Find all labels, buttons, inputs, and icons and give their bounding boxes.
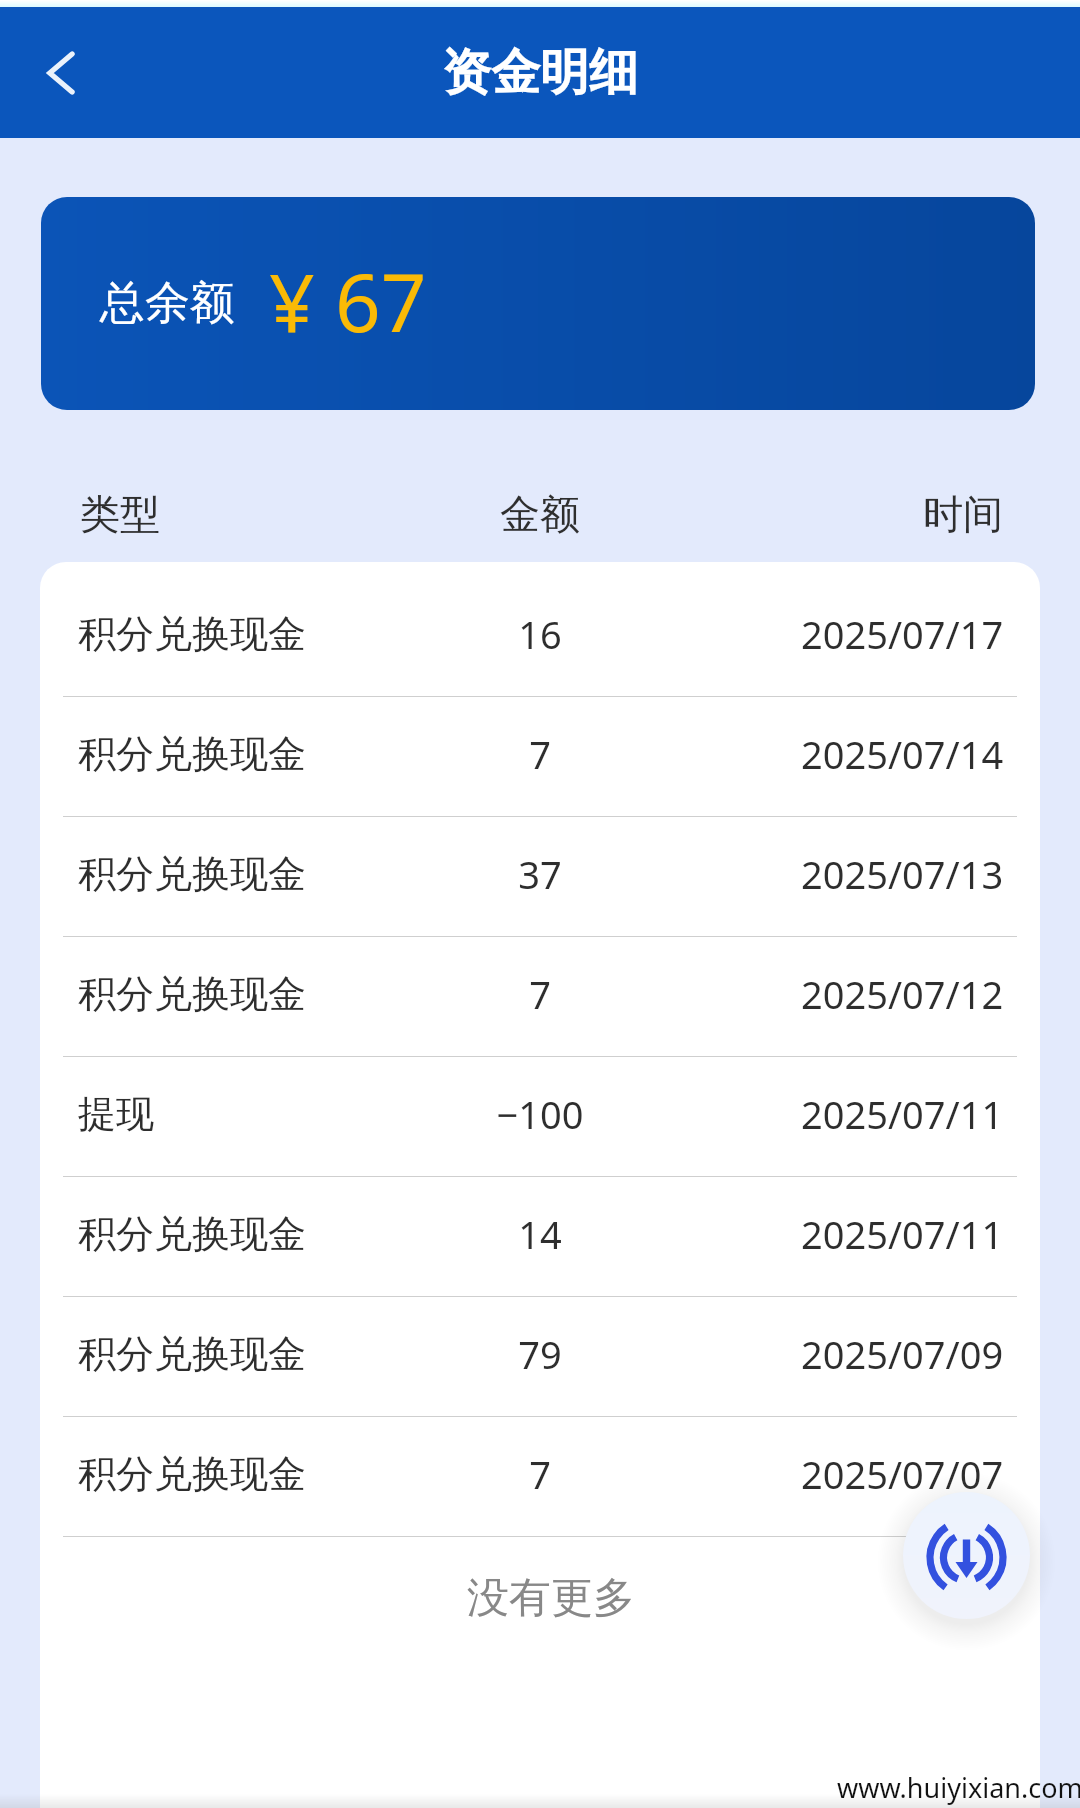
staticText: 金额 bbox=[500, 489, 580, 539]
staticText: 积分兑换现金 bbox=[78, 730, 306, 778]
staticText: 37 bbox=[420, 848, 660, 900]
button[interactable]: Back bbox=[22, 33, 102, 113]
button[interactable]: Download bbox=[903, 1492, 1030, 1619]
staticText: 积分兑换现金 bbox=[78, 610, 306, 658]
button[interactable]: 积分兑换现金 bbox=[40, 1417, 1040, 1537]
staticText: 7 bbox=[420, 1448, 660, 1500]
staticText: 类型 bbox=[80, 489, 160, 539]
staticText: 14 bbox=[420, 1208, 660, 1260]
staticText: 积分兑换现金 bbox=[78, 1210, 306, 1258]
staticText: 积分兑换现金 bbox=[78, 1330, 306, 1378]
staticText: 2025/07/12 bbox=[801, 968, 1004, 1020]
button[interactable]: 总余额 bbox=[41, 197, 1035, 410]
staticText: 16 bbox=[420, 608, 660, 660]
button[interactable]: 积分兑换现金 bbox=[40, 697, 1040, 817]
button[interactable]: 积分兑换现金 bbox=[40, 937, 1040, 1057]
staticText: ¥ bbox=[269, 246, 315, 355]
staticText: 积分兑换现金 bbox=[78, 1450, 306, 1498]
staticText: 79 bbox=[420, 1328, 660, 1380]
button[interactable]: 积分兑换现金 bbox=[40, 817, 1040, 937]
staticText: 2025/07/09 bbox=[801, 1328, 1004, 1380]
staticText: 7 bbox=[420, 968, 660, 1020]
button[interactable]: 提现 bbox=[40, 1057, 1040, 1177]
button[interactable]: 积分兑换现金 bbox=[40, 1297, 1040, 1417]
staticText: 资金明细 bbox=[442, 42, 638, 104]
staticText: 2025/07/07 bbox=[801, 1448, 1004, 1500]
staticText: 67 bbox=[335, 246, 427, 355]
staticText: 积分兑换现金 bbox=[78, 970, 306, 1018]
button[interactable]: 积分兑换现金 bbox=[40, 1177, 1040, 1297]
staticText: −100 bbox=[420, 1088, 660, 1140]
button[interactable]: 积分兑换现金 bbox=[40, 577, 1040, 697]
staticText: 时间 bbox=[923, 489, 1003, 539]
staticText: 2025/07/11 bbox=[801, 1088, 1004, 1140]
staticText: www.huiyixian.com bbox=[837, 1769, 1080, 1806]
staticText: 积分兑换现金 bbox=[78, 850, 306, 898]
staticText: 提现 bbox=[78, 1090, 154, 1138]
staticText: 2025/07/13 bbox=[801, 848, 1004, 900]
staticText: 7 bbox=[420, 728, 660, 780]
staticText: 2025/07/14 bbox=[801, 728, 1004, 780]
staticText: 没有更多 bbox=[467, 1572, 635, 1625]
staticText: 总余额 bbox=[100, 275, 235, 332]
staticText: 2025/07/17 bbox=[801, 608, 1004, 660]
staticText: 2025/07/11 bbox=[801, 1208, 1004, 1260]
